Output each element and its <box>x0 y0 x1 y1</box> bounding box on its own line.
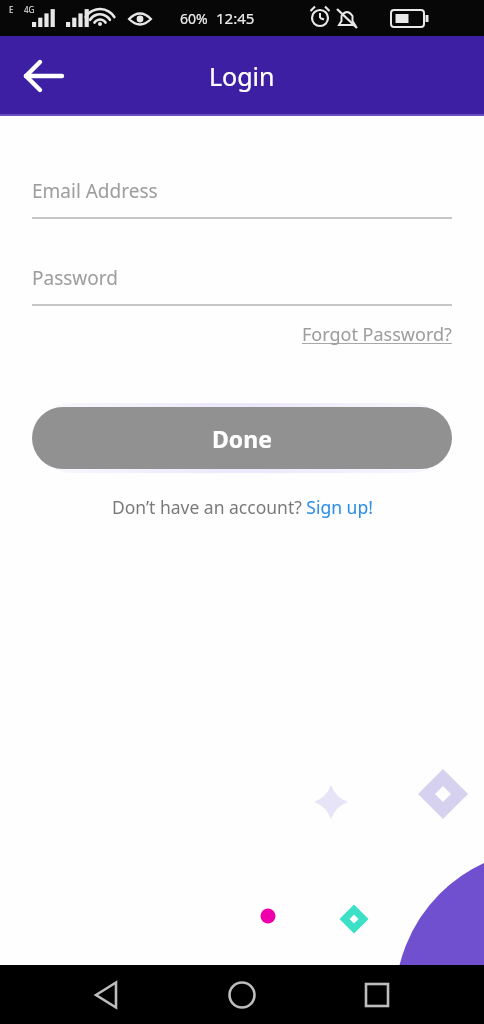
button[interactable]: Back <box>79 967 135 1023</box>
button[interactable]: Done <box>32 407 452 469</box>
staticText: Forgot Password? <box>302 322 452 347</box>
staticText: 12:45 <box>216 8 255 28</box>
staticText: Email Address <box>32 178 158 204</box>
button[interactable]: Don’t have an account? Sign up! <box>112 495 373 519</box>
button[interactable]: Forgot Password? <box>302 322 452 347</box>
staticText: 60% <box>180 9 208 28</box>
staticText: E <box>9 4 14 15</box>
button[interactable]: Home <box>214 967 270 1023</box>
staticText: Done <box>212 423 272 454</box>
staticText: Don’t have an account? Sign up! <box>112 495 373 519</box>
button[interactable]: Recent apps <box>349 967 405 1023</box>
staticText: 4G <box>24 4 35 15</box>
staticText: Login <box>209 59 275 93</box>
button[interactable]: Back <box>16 47 74 105</box>
staticText: Password <box>32 265 118 291</box>
